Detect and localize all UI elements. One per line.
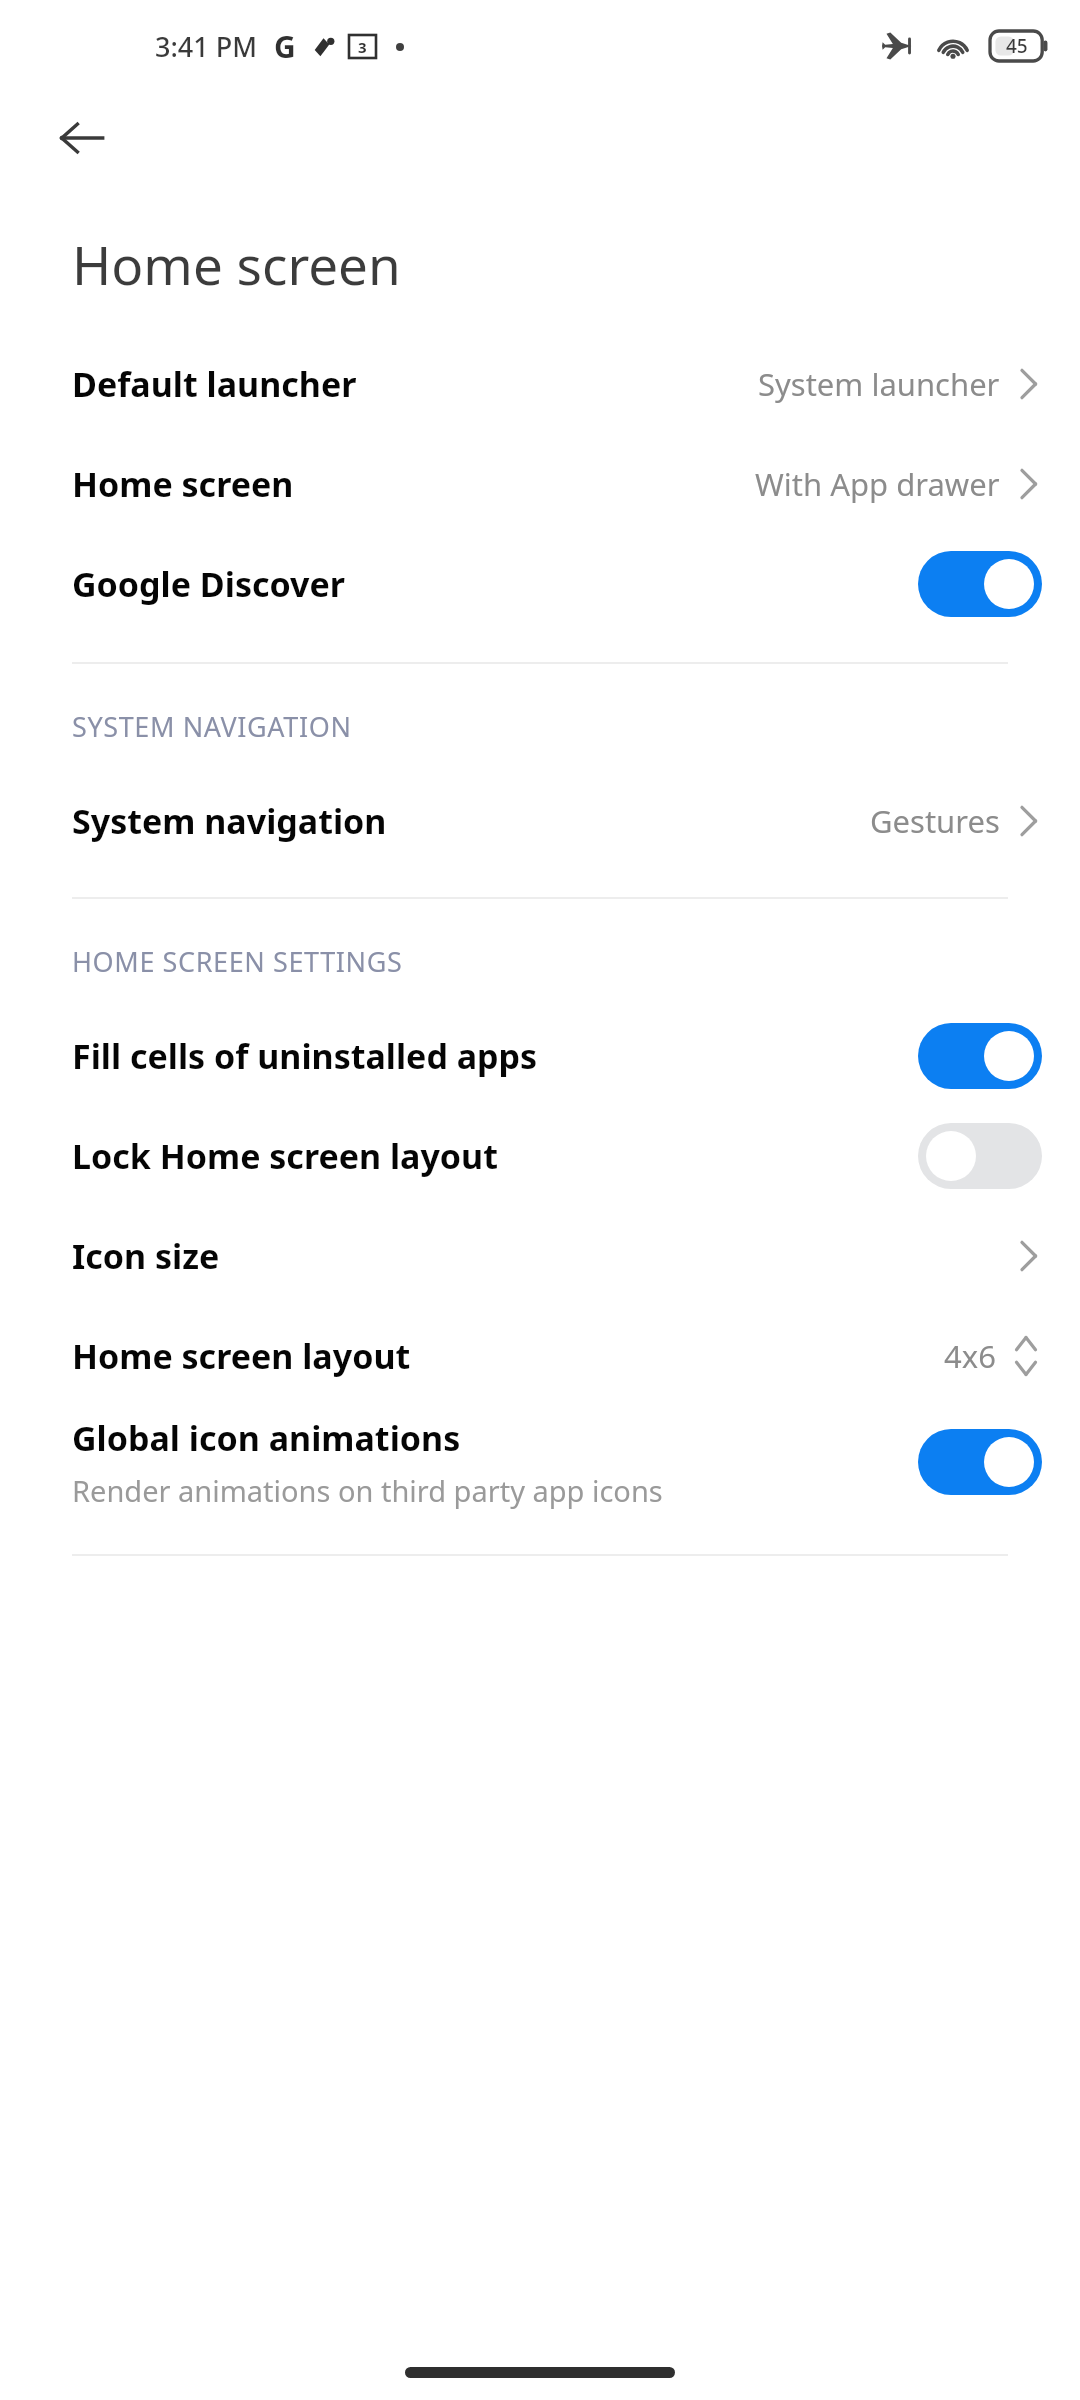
staticText: Icon size (72, 1233, 220, 1279)
staticText: Lock Home screen layout (72, 1133, 498, 1179)
button[interactable]: On (918, 1429, 1042, 1495)
staticText: Fill cells of uninstalled apps (72, 1033, 538, 1079)
staticText: Home screen layout (72, 1333, 411, 1379)
staticText: 3:41 PM (155, 28, 257, 65)
staticText: Google Discover (72, 561, 346, 607)
staticText: HOME SCREEN SETTINGS (72, 943, 403, 980)
button[interactable]: Off (918, 1123, 1042, 1189)
staticText: G (274, 26, 296, 67)
button[interactable]: Back (48, 104, 116, 172)
button[interactable]: Default launcher (0, 334, 1080, 434)
button[interactable]: Home screen (0, 434, 1080, 534)
staticText: 45 (1006, 33, 1028, 59)
button[interactable]: Lock Home screen layout (0, 1106, 1080, 1206)
staticText: SYSTEM NAVIGATION (72, 708, 352, 745)
staticText: System launcher (758, 363, 1000, 405)
staticText: Home screen (72, 461, 294, 507)
staticText: System navigation (72, 798, 387, 844)
button[interactable]: Icon size (0, 1206, 1080, 1306)
button[interactable]: System navigation (0, 771, 1080, 871)
button[interactable]: On (918, 551, 1042, 617)
button[interactable]: Fill cells of uninstalled apps (0, 1006, 1080, 1106)
staticText: Render animations on third party app ico… (72, 1471, 663, 1510)
button[interactable]: Google Discover (0, 534, 1080, 634)
staticText: 4x6 (944, 1335, 996, 1377)
staticText: Gestures (870, 800, 1000, 842)
staticText: Global icon animations (72, 1415, 461, 1461)
staticText: Default launcher (72, 361, 357, 407)
staticText: Home screen (72, 228, 401, 300)
button[interactable]: Home screen layout (0, 1306, 1080, 1406)
staticText: 3 (358, 37, 367, 57)
staticText: With App drawer (755, 463, 1000, 505)
button[interactable]: On (918, 1023, 1042, 1089)
button[interactable]: Global icon animations (0, 1406, 1080, 1518)
